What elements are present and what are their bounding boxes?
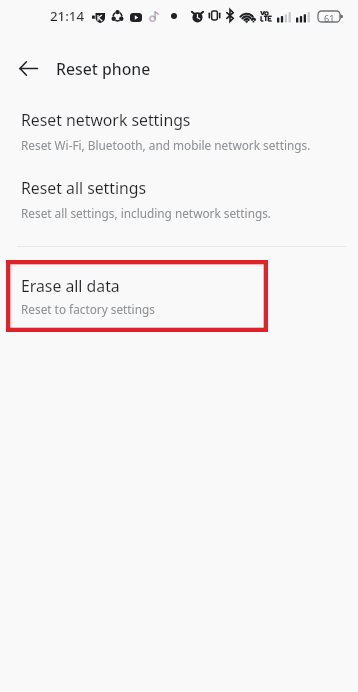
button[interactable]: Back xyxy=(10,50,47,87)
button[interactable]: Reset network settings xyxy=(0,103,358,159)
staticText: Reset Wi-Fi, Bluetooth, and mobile netwo… xyxy=(21,137,311,153)
staticText: Reset phone xyxy=(56,58,151,80)
staticText: Erase all data xyxy=(21,275,120,297)
staticText: Reset network settings xyxy=(21,109,191,131)
staticText: Reset all settings xyxy=(21,177,147,199)
staticText: Reset all settings, including network se… xyxy=(21,205,272,221)
button[interactable]: Erase all data xyxy=(0,269,358,323)
staticText: Reset to factory settings xyxy=(21,301,155,317)
staticText: 21:14 xyxy=(50,7,85,25)
button[interactable]: Reset all settings xyxy=(0,171,358,227)
staticText: 61 xyxy=(324,12,335,24)
